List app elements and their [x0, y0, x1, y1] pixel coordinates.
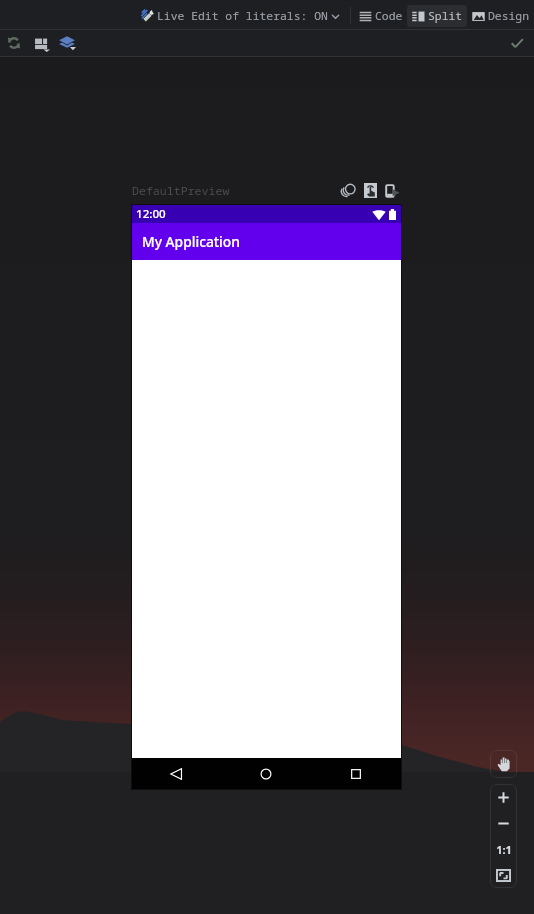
- button[interactable]: Home: [221, 758, 311, 789]
- staticText: 1:1: [496, 842, 512, 857]
- button[interactable]: Run preview on device: [384, 182, 401, 199]
- staticText: Split: [428, 8, 463, 24]
- button[interactable]: Live Edit of literals: ON: [134, 8, 342, 24]
- button[interactable]: Zoom out: [490, 810, 517, 836]
- button[interactable]: Zoom to fit: [490, 862, 517, 888]
- button[interactable]: View modes: [28, 30, 54, 56]
- button[interactable]: Recents: [311, 758, 401, 789]
- button[interactable]: Pan: [490, 750, 517, 778]
- staticText: Code: [375, 8, 403, 24]
- button[interactable]: Build status: [504, 30, 530, 56]
- button[interactable]: Zoom to actual size: [490, 836, 517, 862]
- staticText: Design: [488, 8, 530, 24]
- button[interactable]: Refresh: [1, 30, 27, 56]
- staticText: Live Edit of literals: ON: [157, 8, 328, 24]
- button[interactable]: Design: [467, 5, 534, 27]
- button[interactable]: Animation preview: [340, 182, 357, 199]
- button[interactable]: Zoom in: [490, 784, 517, 810]
- button[interactable]: Split: [407, 5, 467, 27]
- button[interactable]: Interactive mode: [362, 182, 379, 199]
- staticText: My Application: [142, 232, 240, 251]
- button[interactable]: Layers: [54, 30, 80, 56]
- button[interactable]: Back: [132, 758, 221, 789]
- staticText: 12:00: [136, 206, 166, 222]
- button[interactable]: Code: [354, 5, 407, 27]
- staticText: DefaultPreview: [132, 183, 230, 199]
